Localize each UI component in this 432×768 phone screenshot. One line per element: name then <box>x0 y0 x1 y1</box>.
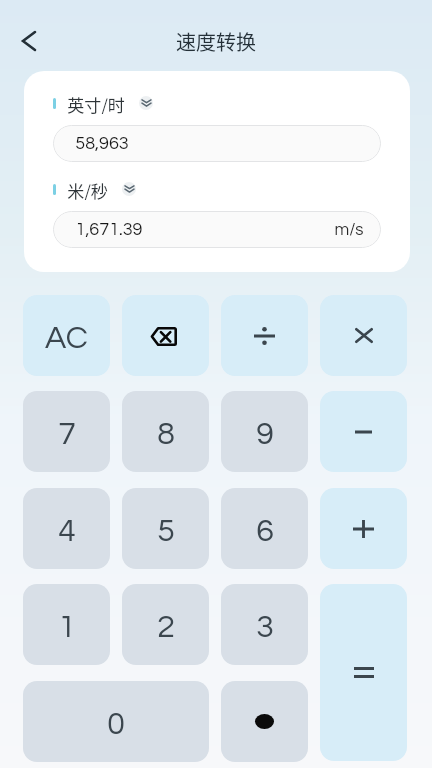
staticText: 米/秒 <box>67 178 108 200</box>
staticText: 1,671.39 <box>75 220 143 239</box>
button[interactable]: Minus <box>320 391 407 472</box>
button[interactable]: 1 <box>23 584 110 665</box>
staticText: 5 <box>157 515 175 548</box>
button[interactable]: 1,671.39 <box>53 211 381 248</box>
button[interactable]: Decimal point <box>221 681 308 762</box>
button[interactable]: 4 <box>23 488 110 569</box>
staticText: 速度转换 <box>176 27 256 56</box>
button[interactable]: AC <box>23 295 110 376</box>
button[interactable]: Backspace <box>122 295 209 376</box>
button[interactable]: Multiply <box>320 295 407 376</box>
button[interactable]: 2 <box>122 584 209 665</box>
staticText: 0 <box>107 708 125 741</box>
staticText: 3 <box>256 611 274 644</box>
staticText: m/s <box>334 221 364 239</box>
staticText: AC <box>45 322 88 355</box>
button[interactable]: 58,963 <box>53 125 381 162</box>
staticText: 7 <box>58 418 76 451</box>
staticText: 9 <box>256 418 274 451</box>
button[interactable]: 9 <box>221 391 308 472</box>
staticText: 58,963 <box>75 134 129 153</box>
staticText: 英寸/时 <box>67 92 125 114</box>
button[interactable]: 米/秒 <box>53 178 136 200</box>
button[interactable]: Back <box>9 21 49 61</box>
button[interactable]: 6 <box>221 488 308 569</box>
button[interactable]: 8 <box>122 391 209 472</box>
staticText: 6 <box>256 515 274 548</box>
staticText: 4 <box>58 515 76 548</box>
staticText: 8 <box>157 418 175 451</box>
button[interactable]: 3 <box>221 584 308 665</box>
button[interactable]: Divide <box>221 295 308 376</box>
button[interactable]: 7 <box>23 391 110 472</box>
staticText: 2 <box>157 611 175 644</box>
button[interactable]: 5 <box>122 488 209 569</box>
staticText: 1 <box>58 611 76 644</box>
button[interactable]: 英寸/时 <box>53 92 153 114</box>
button[interactable]: Equals <box>320 584 407 761</box>
button[interactable]: 0 <box>23 681 209 762</box>
button[interactable]: Plus <box>320 488 407 569</box>
